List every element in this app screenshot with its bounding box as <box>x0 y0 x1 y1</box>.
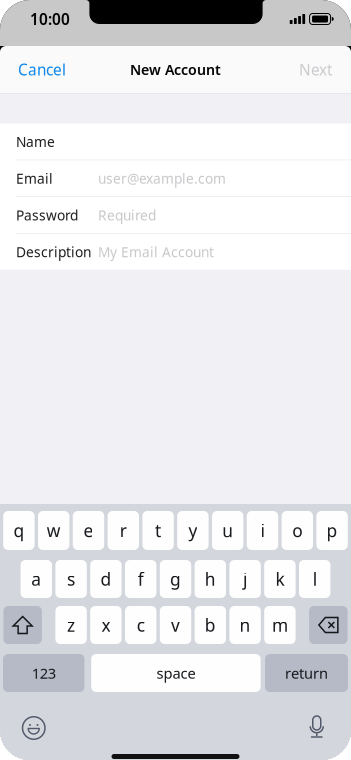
staticText: Required <box>98 206 156 224</box>
button[interactable]: m <box>264 606 296 644</box>
staticText: w <box>47 519 61 542</box>
staticText: r <box>120 519 127 542</box>
staticText: o <box>292 519 302 542</box>
button[interactable]: l <box>299 560 330 598</box>
staticText: a <box>31 567 41 591</box>
staticText: e <box>83 519 93 542</box>
button[interactable]: n <box>229 606 261 644</box>
button[interactable]: x <box>90 606 122 644</box>
button[interactable]: o <box>282 511 313 550</box>
staticText: p <box>327 519 338 542</box>
staticText: Email <box>16 169 53 188</box>
staticText: n <box>240 613 251 637</box>
button[interactable]: j <box>229 560 261 598</box>
staticText: b <box>205 613 216 637</box>
button[interactable]: d <box>90 560 122 598</box>
button[interactable]: Next <box>296 52 336 87</box>
button[interactable]: Shift <box>3 606 42 644</box>
button[interactable]: Name <box>0 124 351 160</box>
button[interactable]: a <box>21 560 52 598</box>
staticText: Description <box>16 242 91 261</box>
staticText: i <box>260 519 264 542</box>
button[interactable]: k <box>264 560 296 598</box>
button[interactable]: Emoji <box>16 711 51 745</box>
button[interactable]: r <box>108 511 139 550</box>
button[interactable]: 123 <box>3 654 84 692</box>
staticText: y <box>188 519 197 542</box>
button[interactable]: Cancel <box>15 52 69 87</box>
button[interactable]: Password <box>0 197 351 233</box>
button[interactable]: v <box>160 606 191 644</box>
button[interactable]: Email <box>0 160 351 196</box>
button[interactable]: p <box>316 511 348 550</box>
button[interactable]: return <box>265 654 348 692</box>
button[interactable]: i <box>247 511 278 550</box>
button[interactable]: b <box>195 606 226 644</box>
button[interactable]: t <box>142 511 174 550</box>
staticText: Name <box>16 132 55 151</box>
button[interactable]: y <box>177 511 209 550</box>
staticText: g <box>170 567 181 591</box>
staticText: user@example.com <box>98 169 226 188</box>
staticText: f <box>138 567 144 591</box>
staticText: 10:00 <box>30 9 70 29</box>
staticText: Password <box>16 206 78 224</box>
button[interactable]: space <box>91 654 261 692</box>
button[interactable]: w <box>38 511 69 550</box>
button[interactable]: Delete <box>309 606 348 644</box>
staticText: t <box>155 519 161 542</box>
button[interactable]: q <box>3 511 35 550</box>
staticText: v <box>171 613 180 637</box>
staticText: s <box>67 567 75 591</box>
staticText: Next <box>299 59 333 80</box>
staticText: m <box>272 613 288 637</box>
staticText: c <box>137 613 145 637</box>
staticText: My Email Account <box>98 242 214 261</box>
button[interactable]: g <box>160 560 191 598</box>
staticText: space <box>156 663 195 683</box>
staticText: k <box>275 567 284 591</box>
staticText: u <box>222 519 233 542</box>
button[interactable]: u <box>212 511 243 550</box>
staticText: New Account <box>130 60 221 79</box>
staticText: x <box>101 613 110 637</box>
button[interactable]: s <box>55 560 87 598</box>
staticText: h <box>205 567 216 591</box>
staticText: l <box>313 567 317 591</box>
button[interactable]: f <box>125 560 156 598</box>
button[interactable]: c <box>125 606 156 644</box>
button[interactable]: Dictate <box>302 710 331 746</box>
button[interactable]: z <box>55 606 87 644</box>
staticText: j <box>243 567 247 591</box>
button[interactable]: e <box>73 511 104 550</box>
staticText: Cancel <box>18 59 66 80</box>
button[interactable]: Description <box>0 234 351 270</box>
staticText: return <box>285 663 328 683</box>
staticText: q <box>13 519 24 542</box>
staticText: d <box>100 567 111 591</box>
button[interactable]: h <box>195 560 226 598</box>
staticText: z <box>67 613 75 637</box>
staticText: 123 <box>32 663 56 683</box>
